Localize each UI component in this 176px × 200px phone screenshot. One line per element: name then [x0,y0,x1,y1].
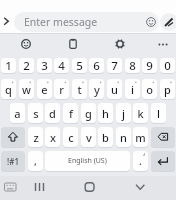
button[interactable]: j [116,103,131,123]
button[interactable] [1,127,25,147]
button[interactable]: !#1 [1,151,25,171]
button[interactable]: k [133,103,148,123]
staticText: d [49,106,56,121]
staticText: f [69,106,73,121]
button[interactable]: i [125,79,140,99]
button[interactable] [2,179,19,196]
button[interactable]: English (US) [45,151,130,171]
button[interactable]: 7 [107,58,122,73]
button[interactable]: 9 [142,58,157,73]
staticText: u [111,82,118,97]
button[interactable]: 1 [1,58,16,73]
staticText: , [34,154,37,168]
staticText: i [131,82,134,97]
button[interactable] [155,36,171,52]
button[interactable]: t [72,79,87,99]
button[interactable]: x [45,127,60,147]
staticText: m [135,130,146,145]
button[interactable]: . [133,151,148,171]
button[interactable]: l [151,103,166,123]
staticText: 3 [41,58,48,73]
button[interactable]: z [28,127,43,147]
staticText: r [59,82,64,97]
staticText: c [68,130,74,145]
button[interactable]: y [89,79,104,99]
staticText: q [5,82,12,97]
button[interactable]: g [81,103,96,123]
button[interactable] [151,127,175,147]
button[interactable]: 4 [54,58,69,73]
button[interactable] [65,36,81,52]
button[interactable]: Enter message [14,12,159,32]
staticText: v [86,130,92,145]
button[interactable] [81,179,99,196]
staticText: y [94,82,100,97]
staticText: e [41,82,48,97]
staticText: !#1 [7,156,19,167]
button[interactable]: 0 [160,58,175,73]
button[interactable]: 5 [72,58,87,73]
staticText: x [50,130,56,145]
button[interactable]: 2 [19,58,34,73]
button[interactable]: e [37,79,52,99]
button[interactable]: w [19,79,34,99]
staticText: p [164,82,171,97]
button[interactable] [151,151,175,171]
button[interactable]: v [81,127,96,147]
staticText: b [102,130,109,145]
button[interactable] [131,179,149,196]
button[interactable]: s [28,103,43,123]
staticText: 8 [129,58,136,73]
staticText: j [122,106,125,121]
staticText: 4 [58,58,65,73]
button[interactable]: , [28,151,43,171]
button[interactable]: m [133,127,148,147]
staticText: 1 [5,58,12,73]
button[interactable] [160,13,176,31]
button[interactable]: b [98,127,113,147]
staticText: 0 [164,58,171,73]
staticText: English (US) [68,156,107,166]
button[interactable] [112,36,128,52]
staticText: 9 [146,58,153,73]
staticText: t [77,82,82,97]
button[interactable]: f [63,103,78,123]
staticText: o [146,82,153,97]
staticText: . [139,154,142,168]
staticText: 2 [23,58,30,73]
button[interactable]: a [10,103,25,123]
button[interactable]: o [142,79,157,99]
staticText: k [137,106,144,121]
button[interactable]: r [54,79,69,99]
button[interactable]: p [160,79,175,99]
staticText: n [120,130,127,145]
button[interactable]: 3 [37,58,52,73]
button[interactable] [18,36,34,52]
staticText: w [22,82,31,97]
staticText: l [157,106,160,121]
staticText: 6 [93,58,100,73]
staticText: Enter message [24,15,98,29]
button[interactable]: h [98,103,113,123]
staticText: z [33,130,39,145]
button[interactable]: 6 [89,58,104,73]
button[interactable]: n [116,127,131,147]
staticText: g [85,106,92,121]
staticText: 5 [76,58,83,73]
staticText: a [14,106,21,121]
button[interactable]: u [107,79,122,99]
button[interactable]: c [63,127,78,147]
button[interactable]: 8 [125,58,140,73]
button[interactable]: d [45,103,60,123]
button[interactable] [31,179,48,196]
staticText: h [102,106,109,121]
staticText: s [33,106,39,121]
button[interactable]: q [1,79,16,99]
staticText: 7 [111,58,118,73]
